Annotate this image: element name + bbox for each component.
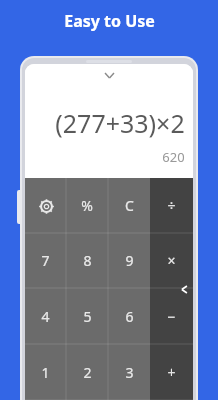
staticText: ÷ — [167, 196, 176, 215]
button[interactable]: 7 — [25, 233, 66, 288]
staticText: 9 — [125, 251, 134, 270]
staticText: 7 — [41, 251, 50, 270]
staticText: 4 — [41, 307, 50, 326]
staticText: 3 — [125, 363, 134, 382]
staticText: 6 — [125, 307, 134, 326]
staticText: Easy to Use — [64, 10, 155, 32]
button[interactable]: 5 — [66, 288, 108, 344]
button[interactable]: 2 — [66, 344, 108, 400]
button[interactable]: 9 — [108, 233, 150, 288]
staticText: 2 — [83, 363, 92, 382]
button[interactable]: C — [108, 178, 150, 233]
staticText: × — [167, 251, 176, 270]
staticText: 620 — [162, 148, 185, 166]
button[interactable]: 1 — [25, 344, 66, 400]
staticText: 1 — [41, 363, 50, 382]
button[interactable]: ÷ — [150, 178, 193, 233]
button[interactable]: 4 — [25, 288, 66, 344]
staticText: + — [167, 363, 176, 382]
staticText: 5 — [83, 307, 92, 326]
button[interactable]: Settings — [25, 178, 66, 233]
button[interactable]: + — [150, 344, 193, 400]
staticText: C — [125, 196, 134, 215]
staticText: 8 — [83, 251, 92, 270]
button[interactable]: 6 — [108, 288, 150, 344]
button[interactable]: % — [66, 178, 108, 233]
staticText: % — [81, 196, 93, 215]
other: Settings — [38, 198, 54, 214]
button[interactable]: 8 — [66, 233, 108, 288]
button[interactable]: − — [150, 288, 193, 344]
button[interactable]: Backspace — [176, 281, 192, 297]
button[interactable]: 3 — [108, 344, 150, 400]
staticText: (277+33)×2 — [55, 106, 185, 140]
button[interactable]: × — [150, 233, 193, 288]
staticText: − — [167, 307, 176, 326]
